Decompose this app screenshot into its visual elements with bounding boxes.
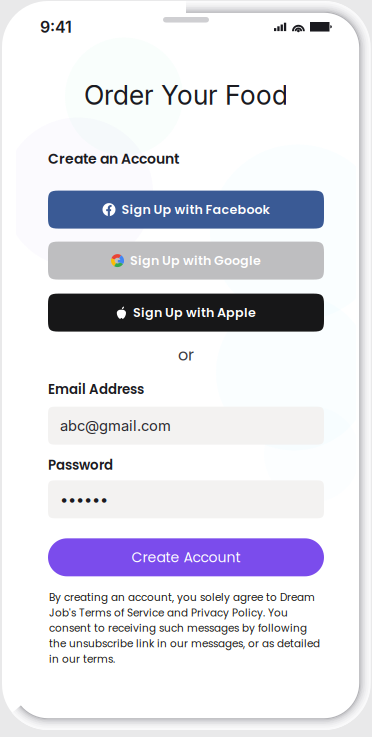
staticText: By creating an account, you solely agree… — [49, 590, 320, 666]
staticText: Password — [48, 456, 113, 474]
staticText: Email Address — [48, 380, 144, 399]
staticText: Create an Account — [48, 149, 179, 169]
staticText: Sign Up with Apple — [133, 304, 256, 321]
button[interactable]: Sign Up with Apple — [48, 294, 324, 332]
button[interactable]: Sign Up with Google — [48, 242, 324, 280]
staticText: or — [178, 344, 194, 366]
staticText: Sign Up with Google — [130, 252, 261, 269]
staticText: Sign Up with Facebook — [121, 201, 269, 218]
staticText: abc@gmail.com — [60, 417, 171, 434]
staticText: •••••• — [60, 490, 108, 508]
button[interactable]: Create Account — [48, 538, 324, 576]
button[interactable]: Sign Up with Facebook — [48, 191, 324, 229]
staticText: 9:41 — [40, 17, 72, 37]
staticText: Order Your Food — [84, 79, 288, 111]
staticText: Create Account — [131, 547, 240, 567]
